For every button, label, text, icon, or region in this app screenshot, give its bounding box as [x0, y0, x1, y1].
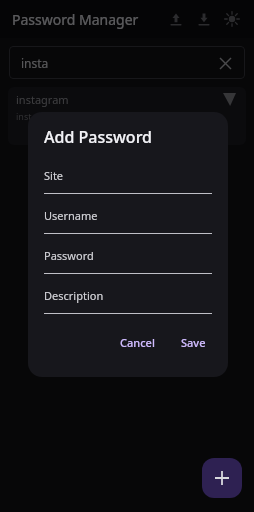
staticText: Site [44, 168, 64, 183]
button[interactable]: Export [162, 5, 190, 33]
staticText: Description [44, 288, 104, 303]
staticText: Cancel [120, 335, 155, 350]
button[interactable]: insta [9, 46, 245, 79]
staticText: inst [16, 110, 32, 122]
button[interactable]: Clear search [215, 53, 235, 73]
staticText: Save [181, 335, 206, 350]
staticText: Username [44, 208, 98, 223]
staticText: instagram [16, 92, 69, 107]
button[interactable]: Password [44, 248, 212, 274]
button[interactable]: Save [175, 330, 212, 355]
button[interactable]: instagram [8, 87, 246, 145]
button[interactable]: Add password [202, 458, 242, 498]
button[interactable]: Import [190, 5, 218, 33]
staticText: Password Manager [12, 10, 139, 29]
staticText: insta [21, 55, 49, 71]
button[interactable]: Description [44, 288, 212, 314]
button[interactable]: Username [44, 208, 212, 234]
staticText: Add Password [44, 126, 153, 148]
staticText: Password [44, 248, 94, 263]
button[interactable]: Cancel [114, 330, 161, 355]
button[interactable]: Toggle theme [218, 5, 246, 33]
button[interactable]: Site [44, 168, 212, 194]
